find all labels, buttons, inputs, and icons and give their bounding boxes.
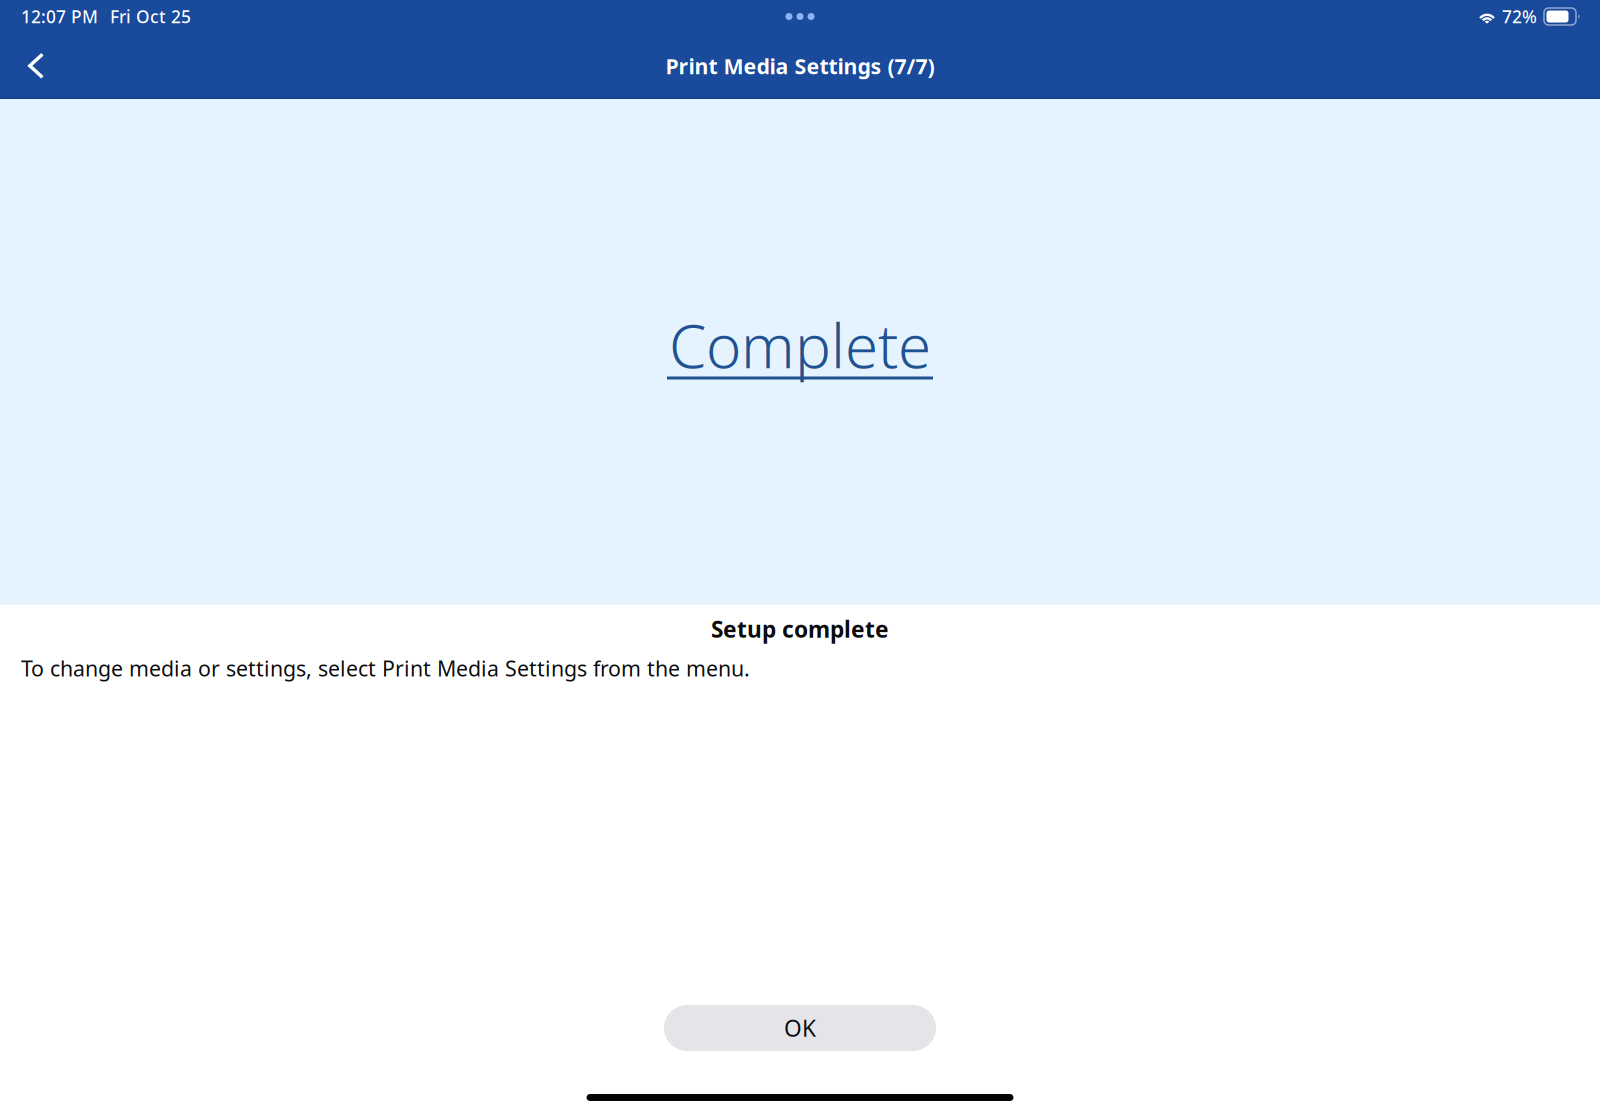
staticText: Print Media Settings (7/7): [665, 52, 934, 80]
staticText: OK: [784, 1013, 816, 1043]
staticText: 12:07 PM: [21, 5, 98, 28]
staticText: 72%: [1502, 5, 1537, 28]
staticText: Complete: [669, 305, 931, 385]
button[interactable]: OK: [664, 1005, 936, 1051]
staticText: Setup complete: [711, 614, 889, 644]
staticText: Fri Oct 25: [110, 5, 191, 28]
staticText: To change media or settings, select Prin…: [21, 654, 750, 682]
button[interactable]: Back: [0, 33, 72, 99]
